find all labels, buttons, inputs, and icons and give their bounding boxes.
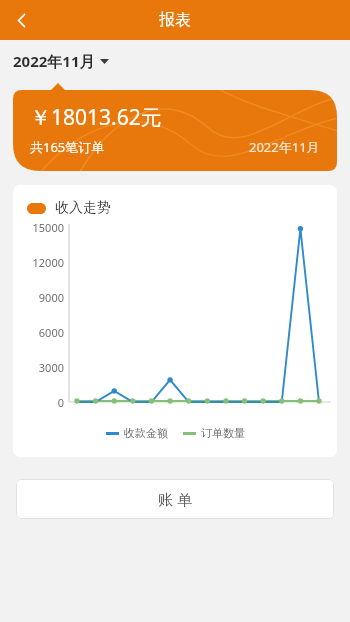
staticText: 15000 xyxy=(32,220,64,234)
staticText: 2022年11月 xyxy=(13,51,95,71)
staticText: 3000 xyxy=(38,360,64,374)
staticText: 收款金额 xyxy=(124,426,168,440)
staticText: 2022年11月 xyxy=(249,138,320,156)
button[interactable]: 2022年11月 xyxy=(13,51,109,71)
staticText: 账 单 xyxy=(158,489,192,509)
button[interactable]: ￥18013.62元 xyxy=(13,83,337,171)
staticText: 12000 xyxy=(32,255,64,269)
staticText: 订单数量 xyxy=(201,426,245,440)
staticText: 9000 xyxy=(38,290,64,304)
staticText: 收入走势 xyxy=(55,199,111,217)
button[interactable]: 账 单 xyxy=(16,479,334,519)
staticText: 报表 xyxy=(159,10,191,30)
staticText: ￥18013.62元 xyxy=(30,103,162,132)
staticText: 0 xyxy=(57,395,64,409)
staticText: 共165笔订单 xyxy=(30,138,105,156)
button[interactable]: Back xyxy=(0,0,42,40)
staticText: 6000 xyxy=(38,325,64,339)
